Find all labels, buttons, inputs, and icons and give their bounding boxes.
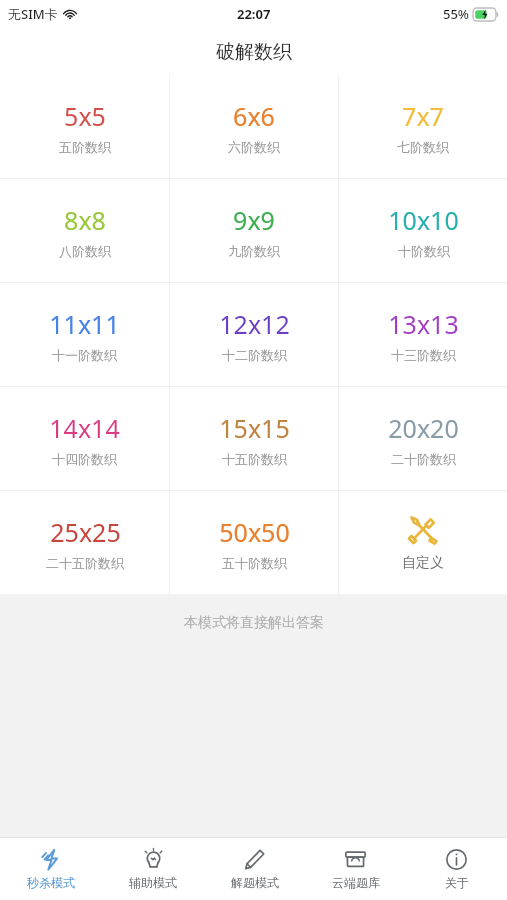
staticText: 11x11 <box>49 307 120 341</box>
staticText: 14x14 <box>49 411 120 445</box>
staticText: 15x15 <box>219 411 290 445</box>
button[interactable]: 9x9 <box>170 179 338 282</box>
other: 自定义 <box>407 513 439 545</box>
staticText: 八阶数织 <box>59 243 111 259</box>
staticText: 九阶数织 <box>228 243 280 259</box>
staticText: 秒杀模式 <box>27 875 75 890</box>
button[interactable]: 辅助模式 <box>102 838 204 900</box>
button[interactable]: 15x15 <box>170 387 338 490</box>
staticText: 9x9 <box>233 203 275 237</box>
staticText: 20x20 <box>388 411 459 445</box>
staticText: 二十阶数织 <box>391 451 456 467</box>
staticText: 13x13 <box>388 307 459 341</box>
staticText: 十五阶数织 <box>222 451 287 467</box>
staticText: 解题模式 <box>231 875 279 890</box>
button[interactable]: 13x13 <box>339 283 507 386</box>
button[interactable]: 8x8 <box>0 179 169 282</box>
staticText: 22:07 <box>237 5 271 23</box>
button[interactable]: 5x5 <box>0 75 169 178</box>
staticText: 云端题库 <box>332 875 380 890</box>
staticText: 十二阶数织 <box>222 347 287 363</box>
button[interactable]: 云端题库 <box>305 838 406 900</box>
staticText: 55% <box>443 5 469 23</box>
staticText: 辅助模式 <box>129 875 177 890</box>
button[interactable]: 10x10 <box>339 179 507 282</box>
button[interactable]: 11x11 <box>0 283 169 386</box>
button[interactable]: 7x7 <box>339 75 507 178</box>
staticText: 五阶数织 <box>59 139 111 155</box>
button[interactable]: 14x14 <box>0 387 169 490</box>
staticText: 8x8 <box>64 203 106 237</box>
staticText: 无SIM卡 <box>8 5 58 23</box>
staticText: 六阶数织 <box>228 139 280 155</box>
staticText: 五十阶数织 <box>222 555 287 571</box>
staticText: 12x12 <box>219 307 290 341</box>
staticText: 七阶数织 <box>397 139 449 155</box>
staticText: 自定义 <box>402 554 444 572</box>
button[interactable]: 秒杀模式 <box>0 838 102 900</box>
staticText: 十阶数织 <box>398 243 450 259</box>
staticText: 5x5 <box>64 99 106 133</box>
staticText: 二十五阶数织 <box>46 555 124 571</box>
staticText: 十一阶数织 <box>52 347 117 363</box>
staticText: 关于 <box>445 875 469 890</box>
staticText: 十四阶数织 <box>52 451 117 467</box>
staticText: 6x6 <box>233 99 275 133</box>
button[interactable]: 12x12 <box>170 283 338 386</box>
staticText: 10x10 <box>388 203 459 237</box>
button[interactable]: 关于 <box>406 838 507 900</box>
button[interactable]: 自定义 <box>339 491 507 594</box>
staticText: 本模式将直接解出答案 <box>184 614 324 632</box>
staticText: 25x25 <box>50 515 121 549</box>
button[interactable]: 50x50 <box>170 491 338 594</box>
staticText: 50x50 <box>219 515 290 549</box>
staticText: 破解数织 <box>216 40 292 64</box>
button[interactable]: 25x25 <box>0 491 169 594</box>
staticText: 7x7 <box>402 99 444 133</box>
staticText: 十三阶数织 <box>391 347 456 363</box>
button[interactable]: 6x6 <box>170 75 338 178</box>
button[interactable]: 解题模式 <box>204 838 305 900</box>
button[interactable]: 20x20 <box>339 387 507 490</box>
